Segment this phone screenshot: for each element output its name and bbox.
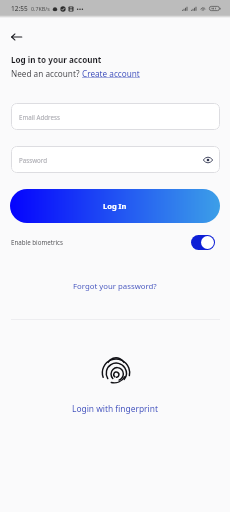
staticText: 12:55	[11, 4, 28, 13]
staticText: Enable biometrics	[11, 238, 63, 246]
button[interactable]: Login with fingerprint	[72, 403, 158, 414]
button[interactable]: Create account	[82, 68, 140, 79]
button[interactable]: Forgot your password?	[73, 281, 157, 292]
button[interactable]: Login with fingerprint	[100, 354, 131, 386]
staticText: Need an account?	[11, 68, 82, 79]
staticText: Log In	[103, 201, 127, 211]
button[interactable]: Log In	[10, 189, 220, 223]
staticText: Password	[19, 156, 47, 164]
button[interactable]: Enable biometrics	[191, 235, 215, 250]
button[interactable]: Password	[11, 146, 220, 173]
staticText: Log in to your account	[11, 54, 102, 65]
staticText: Email Address	[19, 113, 60, 121]
button[interactable]: Email Address	[11, 103, 220, 130]
button[interactable]: Show password	[202, 154, 214, 166]
button[interactable]: Back	[7, 28, 25, 46]
staticText: 0.7KB/s	[31, 5, 50, 12]
